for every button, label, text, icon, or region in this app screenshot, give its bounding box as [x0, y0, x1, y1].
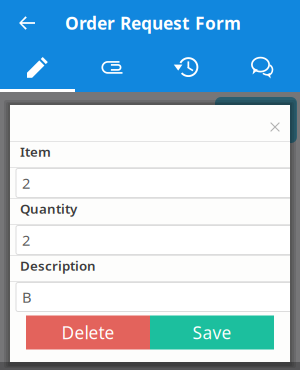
staticText: Item: [20, 143, 51, 160]
button[interactable]: Close: [260, 105, 290, 141]
button[interactable]: Attachments: [75, 46, 150, 89]
staticText: Order Request Form: [65, 11, 241, 34]
button[interactable]: Comments: [225, 46, 300, 89]
staticText: Description: [20, 257, 96, 274]
staticText: B: [22, 287, 32, 307]
staticText: Save: [192, 321, 231, 344]
staticText: Delete: [61, 321, 114, 344]
staticText: Quantity: [20, 200, 77, 217]
button[interactable]: Save: [150, 315, 274, 349]
button[interactable]: Form: [0, 46, 75, 89]
button[interactable]: Back: [0, 0, 54, 46]
staticText: 2: [22, 230, 30, 250]
button[interactable]: Delete: [26, 315, 150, 349]
button[interactable]: History: [150, 46, 225, 89]
staticText: 2: [22, 173, 30, 193]
